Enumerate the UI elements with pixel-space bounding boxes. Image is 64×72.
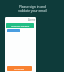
staticText: Continue	[14, 67, 25, 70]
staticText: Acme	[28, 18, 36, 22]
staticText: Please sign in and validate your email	[18, 5, 47, 13]
button[interactable]: Resend email	[7, 29, 20, 32]
button[interactable]: Account created	[6, 23, 34, 28]
button[interactable]: Continue	[7, 66, 32, 71]
staticText: Account created	[11, 24, 30, 27]
